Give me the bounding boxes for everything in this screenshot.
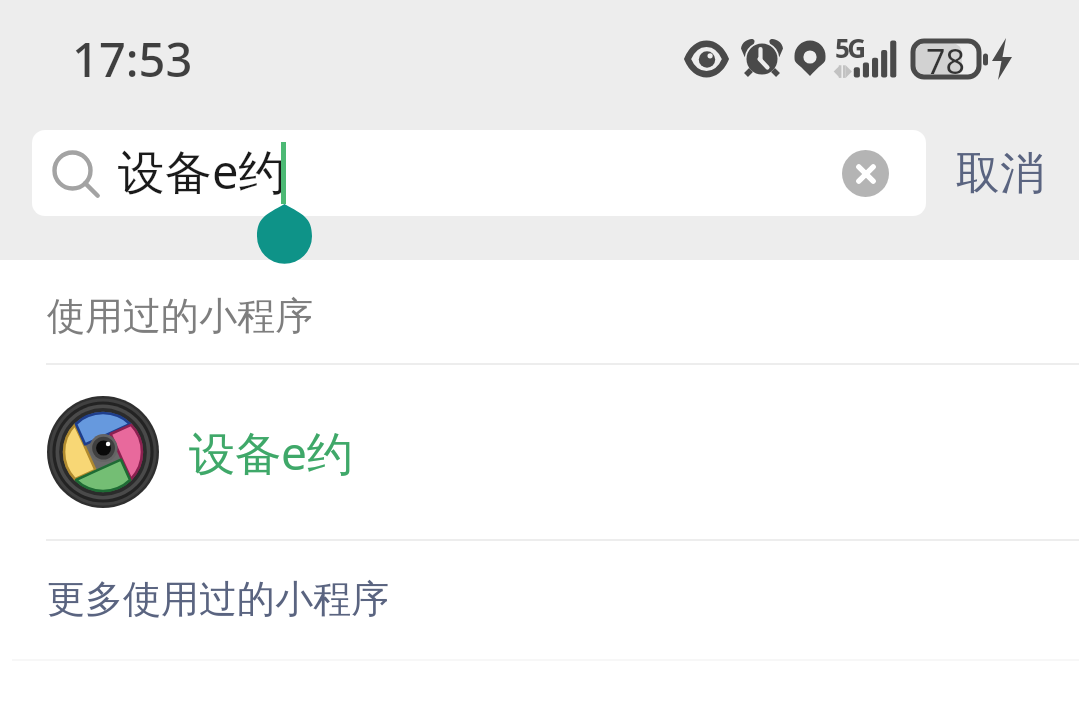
button[interactable]: 设备e约 [0,365,1079,539]
staticText: 使用过的小程序 [47,292,313,340]
staticText: 更多使用过的小程序 [47,575,389,623]
button[interactable]: 取消 [946,130,1054,216]
button[interactable]: Clear search text [842,150,889,197]
staticText: 设备e约 [118,139,286,203]
staticText: 5G [835,30,864,65]
staticText: 取消 [956,146,1044,201]
staticText: 设备e约 [189,421,353,484]
staticText: 78 [926,38,965,84]
staticText: 17:53 [72,27,193,91]
button[interactable]: 设备e约 [32,130,926,216]
button[interactable]: 更多使用过的小程序 [0,541,1079,659]
